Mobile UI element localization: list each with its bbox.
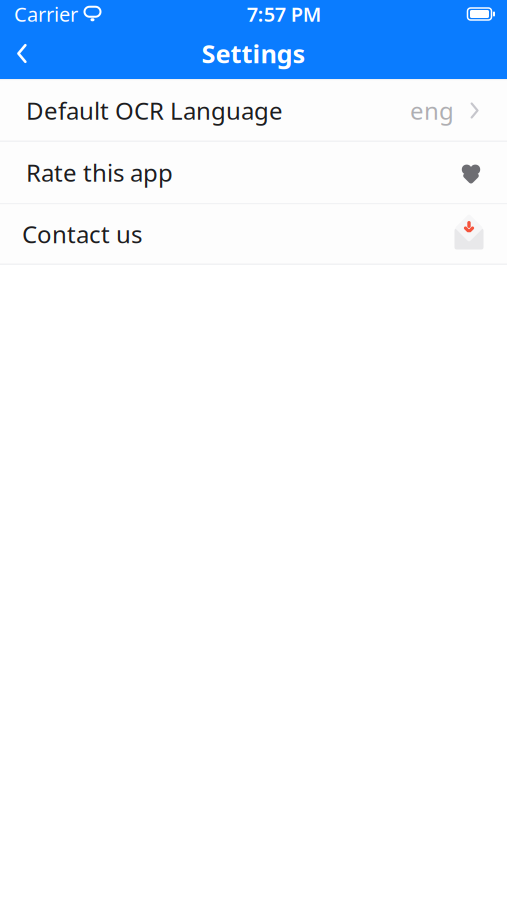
staticText: Contact us bbox=[22, 218, 142, 250]
staticText: Default OCR Language bbox=[26, 95, 283, 126]
staticText: Rate this app bbox=[26, 157, 173, 188]
staticText: 7:57 PM bbox=[247, 1, 322, 27]
button[interactable]: Contact us bbox=[0, 204, 507, 263]
staticText: eng bbox=[410, 95, 454, 126]
button[interactable]: Rate this app bbox=[0, 142, 507, 203]
button[interactable]: Back bbox=[0, 31, 44, 75]
staticText: Settings bbox=[201, 37, 305, 70]
staticText: Carrier bbox=[14, 1, 78, 27]
button[interactable]: Default OCR Language bbox=[0, 80, 507, 140]
